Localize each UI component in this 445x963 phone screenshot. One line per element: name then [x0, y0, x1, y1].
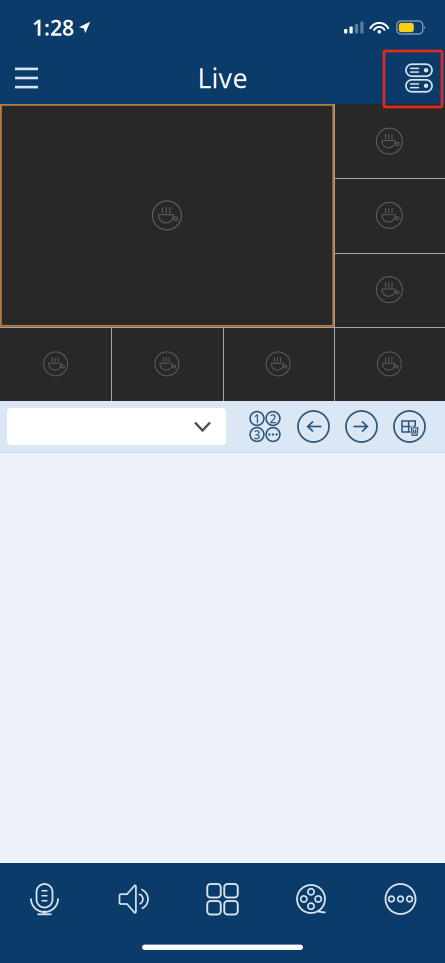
staticText: 3 — [253, 426, 260, 442]
button[interactable]: Two-way talk — [0, 863, 89, 925]
button[interactable]: Camera window 7 — [222, 327, 334, 401]
staticText: 2 — [269, 410, 276, 426]
button[interactable]: Camera window 5 — [0, 327, 111, 401]
button[interactable]: Audio — [89, 863, 178, 925]
button[interactable]: Devices — [393, 52, 445, 104]
staticText: Live — [197, 60, 247, 96]
staticText: 1:28 — [32, 13, 74, 42]
button[interactable]: Playback — [267, 863, 356, 925]
button[interactable]: Live view — [178, 863, 267, 925]
button[interactable]: Camera window 4 — [334, 252, 445, 327]
button[interactable]: Next page — [333, 405, 381, 447]
button[interactable]: Close all views — [381, 405, 445, 447]
button[interactable]: More — [356, 863, 445, 925]
button[interactable]: Camera window 1 — [0, 104, 334, 327]
button[interactable]: Camera window 2 — [334, 104, 445, 178]
button[interactable]: Channel numbers — [245, 405, 285, 447]
button[interactable]: Camera window 3 — [334, 178, 445, 252]
button[interactable]: Menu — [0, 52, 54, 104]
button[interactable]: Camera window 8 — [334, 327, 445, 401]
button[interactable]: Camera window 6 — [111, 327, 222, 401]
button[interactable]: Select camera — [0, 408, 226, 445]
button[interactable]: Previous page — [285, 405, 333, 447]
staticText: 1 — [253, 410, 260, 426]
